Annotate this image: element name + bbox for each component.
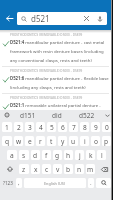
staticText: i [84, 137, 86, 146]
staticText: PROSTHODONTICS (REMOVABLE) D5000 - D5899 [10, 96, 83, 100]
staticText: h [66, 151, 71, 160]
button[interactable]: More suggestions [102, 110, 113, 120]
staticText: x [34, 165, 38, 174]
button[interactable]: d [31, 150, 40, 160]
staticText: 5 [50, 123, 54, 132]
button[interactable]: z [19, 164, 29, 174]
button[interactable]: Search [96, 178, 111, 188]
button[interactable]: 3 [25, 122, 34, 132]
staticText: did [52, 111, 62, 120]
staticText: 3 [28, 123, 32, 132]
staticText: f [45, 151, 48, 160]
button[interactable]: k [86, 150, 95, 160]
button[interactable]: o [91, 136, 100, 146]
staticText: v [56, 165, 60, 174]
button[interactable]: d522 [72, 110, 102, 120]
button[interactable]: b [64, 164, 73, 174]
staticText: c [45, 165, 49, 174]
button[interactable]: 1 [2, 122, 12, 132]
button[interactable]: r [36, 136, 45, 146]
staticText: 9 [94, 123, 98, 132]
staticText: 1 [5, 123, 9, 132]
staticText: n [77, 165, 82, 174]
button[interactable]: d521 [17, 12, 107, 25]
button[interactable]: PROSTHODONTICS (REMOVABLE) D5000 - D5899 [0, 94, 113, 121]
staticText: 2 [17, 123, 21, 132]
button[interactable]: 6 [58, 122, 67, 132]
button[interactable]: s [19, 150, 29, 160]
button[interactable]: ?123 [2, 178, 14, 188]
staticText: z [22, 165, 26, 174]
button[interactable]: j [75, 150, 84, 160]
button[interactable]: Shift [2, 164, 17, 174]
staticText: PROSTHODONTICS (REMOVABLE) D5000 - D5899 [10, 69, 83, 73]
staticText: 4 [39, 123, 43, 132]
staticText: 0 [105, 123, 109, 132]
staticText: d [33, 151, 38, 160]
button[interactable]: Keyboard settings [0, 110, 13, 120]
staticText: s [22, 151, 26, 160]
staticText: 7 [72, 123, 76, 132]
button[interactable]: v [53, 164, 62, 174]
button[interactable]: PROSTHODONTICS (REMOVABLE) D5000 - D5899 [0, 31, 113, 67]
button[interactable]: did [42, 110, 72, 120]
button[interactable]: f [42, 150, 51, 160]
staticText: q [5, 137, 10, 146]
button[interactable]: p [102, 136, 111, 146]
staticText: , [18, 179, 20, 187]
button[interactable]: Voice search [94, 13, 105, 24]
staticText: b [66, 165, 71, 174]
button[interactable]: d151 [13, 110, 42, 120]
button[interactable]: 7 [69, 122, 78, 132]
button[interactable]: w [14, 136, 23, 146]
button[interactable]: a [7, 150, 17, 160]
staticText: . [90, 179, 92, 187]
staticText: 8 [83, 123, 87, 132]
staticText: ?123 [3, 180, 13, 186]
button[interactable]: Back [3, 12, 15, 24]
button[interactable]: 0 [102, 122, 111, 132]
button[interactable]: 8 [80, 122, 89, 132]
staticText: PROSTHODONTICS (REMOVABLE) D5000 - D5899 [10, 33, 83, 37]
staticText: u [71, 137, 76, 146]
button[interactable]: c [42, 164, 51, 174]
staticText: g [55, 151, 60, 160]
staticText: r [39, 137, 42, 146]
button[interactable]: 5 [47, 122, 56, 132]
button[interactable]: l [97, 150, 106, 160]
staticText: t [50, 137, 53, 146]
staticText: D521:1 removable unilateral partial dent… [10, 102, 109, 117]
button[interactable]: 2 [14, 122, 23, 132]
staticText: m [87, 165, 94, 174]
staticText: English (US) [44, 181, 66, 186]
staticText: 6 [61, 123, 65, 132]
button[interactable]: u [69, 136, 78, 146]
staticText: d521 [31, 13, 50, 24]
staticText: p [104, 137, 109, 146]
button[interactable]: g [53, 150, 62, 160]
button[interactable]: i [80, 136, 89, 146]
button[interactable]: . [88, 178, 94, 188]
button[interactable]: Backspace [97, 164, 111, 174]
button[interactable]: Clear query [81, 13, 92, 24]
button[interactable]: y [58, 136, 67, 146]
staticText: D521:6 mandibular partial denture - flex… [10, 75, 109, 90]
staticText: e [28, 137, 32, 146]
button[interactable]: q [2, 136, 12, 146]
button[interactable]: 4 [36, 122, 45, 132]
button[interactable]: , [16, 178, 22, 188]
button[interactable]: English (US) [24, 178, 86, 188]
button[interactable]: x [31, 164, 40, 174]
button[interactable]: t [47, 136, 56, 146]
staticText: a [10, 151, 14, 160]
staticText: y [61, 137, 65, 146]
button[interactable]: e [25, 136, 34, 146]
button[interactable]: h [64, 150, 73, 160]
button[interactable]: PROSTHODONTICS (REMOVABLE) D5000 - D5899 [0, 67, 113, 94]
staticText: w [16, 137, 22, 146]
button[interactable]: 9 [91, 122, 100, 132]
staticText: d522 [79, 111, 95, 120]
button[interactable]: n [75, 164, 84, 174]
button[interactable]: m [86, 164, 95, 174]
staticText: d151 [20, 111, 36, 120]
